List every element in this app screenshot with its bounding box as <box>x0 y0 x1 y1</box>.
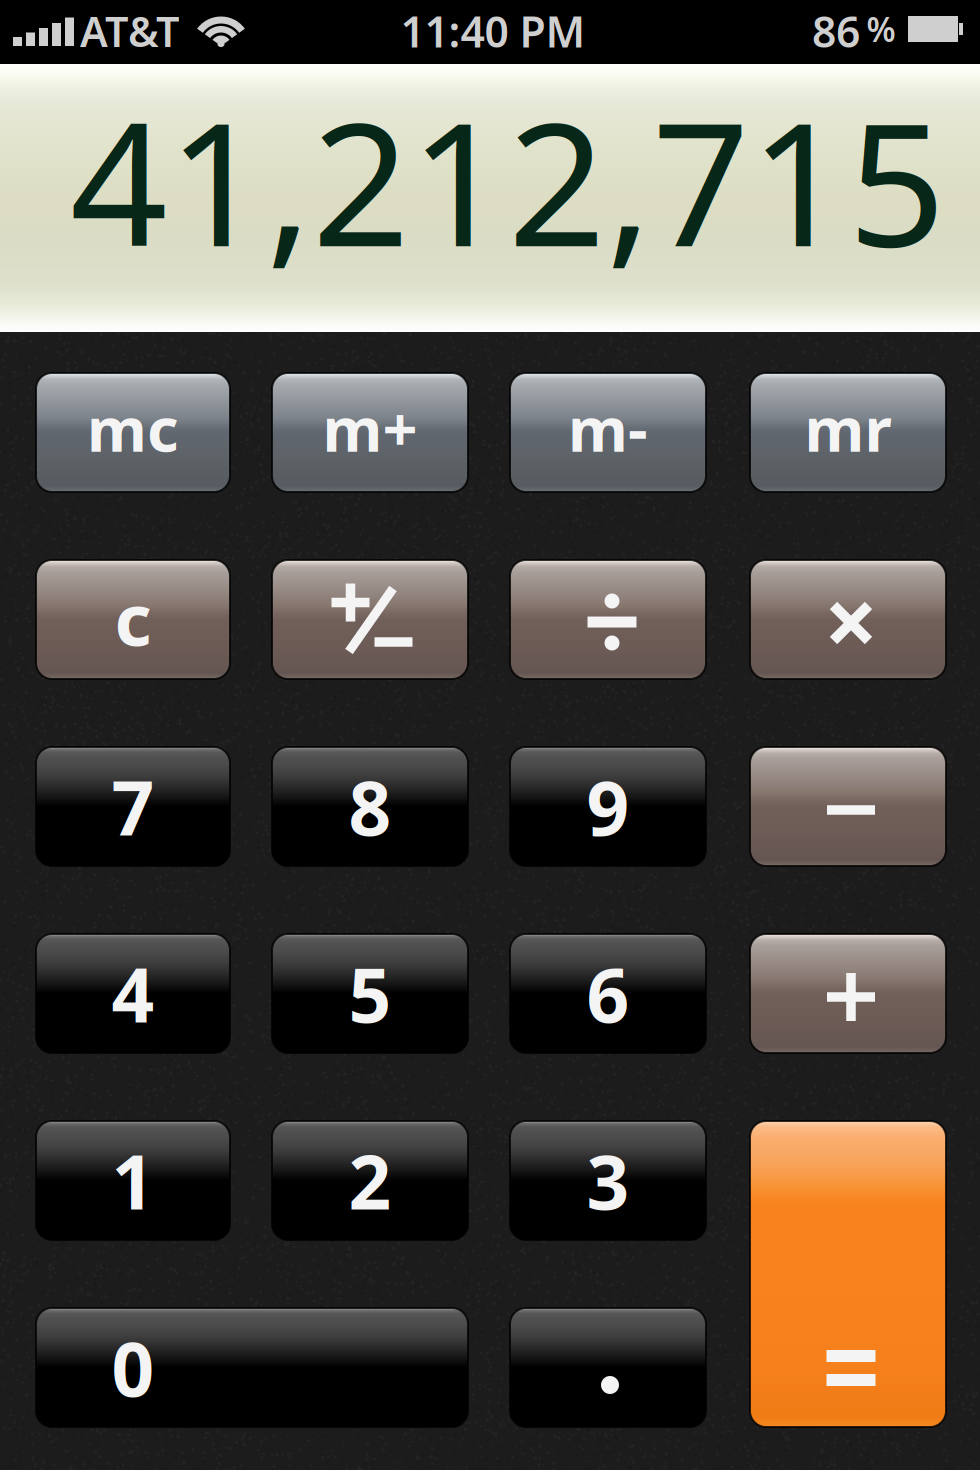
button[interactable]: m+ <box>272 373 468 492</box>
staticText: 8 <box>348 757 391 856</box>
button[interactable]: mc <box>36 373 230 492</box>
button[interactable]: 9 <box>510 747 706 866</box>
button[interactable]: mr <box>750 373 946 492</box>
staticText: c <box>114 570 151 666</box>
staticText: 0 <box>111 1318 154 1417</box>
button[interactable]: 7 <box>36 747 230 866</box>
button[interactable]: c <box>36 560 230 679</box>
button[interactable]: 0 <box>36 1308 468 1427</box>
button[interactable]: Decimal point <box>510 1308 706 1427</box>
staticText: 5 <box>348 944 391 1043</box>
staticText: 3 <box>586 1131 629 1230</box>
staticText: 7 <box>111 757 154 856</box>
staticText: 86 <box>812 3 860 59</box>
button[interactable]: Minus <box>750 747 946 866</box>
staticText: m- <box>568 387 648 469</box>
button[interactable]: 8 <box>272 747 468 866</box>
staticText: AT&T <box>80 4 180 58</box>
staticText: 41,212,715 <box>70 67 946 293</box>
button[interactable]: Multiply <box>750 560 946 679</box>
staticText: 9 <box>586 757 629 856</box>
button[interactable]: Plus <box>750 934 946 1053</box>
staticText: 2 <box>348 1131 391 1230</box>
button[interactable]: 2 <box>272 1121 468 1240</box>
button[interactable]: 6 <box>510 934 706 1053</box>
staticText: % <box>866 7 895 51</box>
button[interactable]: 3 <box>510 1121 706 1240</box>
button[interactable]: Equals <box>750 1121 946 1427</box>
button[interactable]: 5 <box>272 934 468 1053</box>
button[interactable]: 1 <box>36 1121 230 1240</box>
staticText: mc <box>87 387 179 469</box>
staticText: 4 <box>111 944 154 1043</box>
button[interactable]: Divide <box>510 560 706 679</box>
staticText: 1 <box>111 1131 154 1230</box>
staticText: 6 <box>586 944 629 1043</box>
button[interactable]: m- <box>510 373 706 492</box>
button[interactable]: Plus Minus <box>272 560 468 679</box>
staticText: 11:40 PM <box>400 3 585 59</box>
staticText: m+ <box>322 387 417 469</box>
button[interactable]: 4 <box>36 934 230 1053</box>
staticText: mr <box>804 387 891 469</box>
